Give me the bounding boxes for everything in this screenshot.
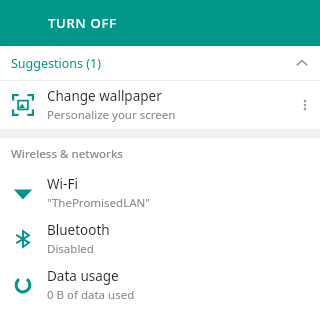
- staticText: "ThePromisedLAN": [47, 195, 150, 211]
- button[interactable]: Change wallpaper: [0, 81, 320, 129]
- button[interactable]: Suggestions (1): [0, 46, 320, 80]
- staticText: 0 B of data used: [47, 287, 135, 303]
- staticText: Bluetooth: [47, 221, 110, 239]
- staticText: Disabled: [47, 241, 94, 257]
- staticText: TURN OFF: [48, 14, 117, 32]
- staticText: Personalize your screen: [47, 107, 176, 123]
- staticText: Change wallpaper: [47, 87, 162, 105]
- other: Collapse suggestions: [294, 55, 310, 71]
- staticText: Suggestions (1): [11, 55, 101, 72]
- button[interactable]: More options: [290, 90, 320, 120]
- button[interactable]: TURN OFF: [38, 8, 127, 38]
- staticText: Wi-Fi: [47, 175, 78, 193]
- button[interactable]: Wi-Fi: [0, 170, 320, 216]
- button[interactable]: Bluetooth: [0, 216, 320, 262]
- button[interactable]: Data usage: [0, 262, 320, 308]
- staticText: Wireless & networks: [11, 146, 123, 162]
- staticText: Data usage: [47, 267, 119, 285]
